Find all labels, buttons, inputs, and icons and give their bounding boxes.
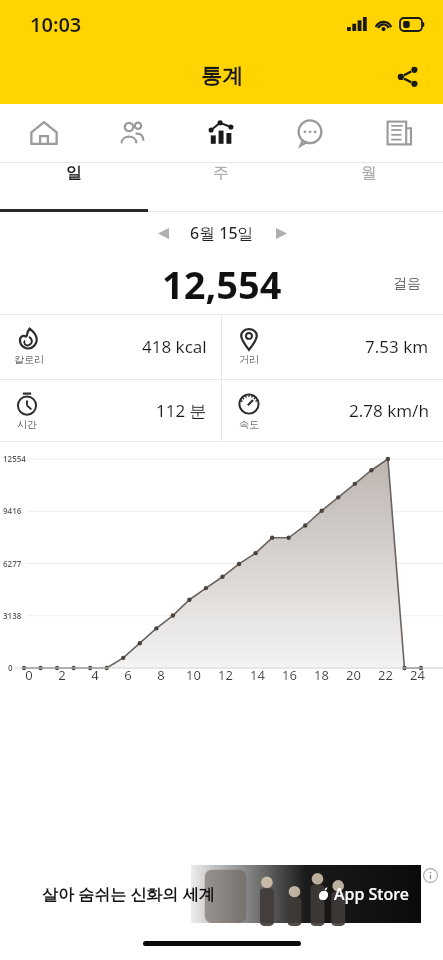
staticText: 6277: [3, 558, 22, 569]
staticText: 12: [218, 666, 233, 684]
staticText: 시간: [17, 418, 37, 431]
staticText: 칼로리: [14, 353, 44, 366]
staticText: 10: [186, 666, 201, 684]
staticText: 112 분: [156, 399, 207, 422]
staticText: 0: [8, 662, 13, 673]
staticText: 8: [157, 666, 165, 684]
button[interactable]: Next day: [264, 216, 298, 250]
staticText: App Store: [334, 883, 409, 905]
staticText: 10:03: [30, 11, 82, 38]
button[interactable]: Previous day: [146, 216, 180, 250]
staticText: 월: [361, 163, 377, 183]
staticText: 12,554: [162, 258, 282, 310]
button[interactable]: 월: [295, 163, 443, 183]
button[interactable]: App Store: [0, 862, 443, 926]
button[interactable]: 속도: [222, 380, 443, 441]
staticText: 6월 15일: [190, 222, 254, 244]
staticText: 24: [410, 666, 425, 684]
button[interactable]: 거리: [222, 315, 443, 377]
button[interactable]: Home: [0, 104, 88, 162]
button[interactable]: 일: [0, 163, 147, 183]
staticText: 12554: [3, 453, 26, 464]
button[interactable]: Ad info: [421, 866, 439, 884]
button[interactable]: 시간: [0, 380, 221, 441]
staticText: 418 kcal: [142, 335, 207, 358]
staticText: 2: [58, 666, 66, 684]
staticText: 0: [25, 666, 33, 684]
staticText: 3138: [3, 610, 22, 621]
staticText: 2.78 km/h: [349, 399, 429, 422]
staticText: 일: [66, 163, 82, 183]
button[interactable]: Friends: [88, 104, 176, 162]
staticText: 4: [91, 666, 99, 684]
staticText: 걸음: [393, 275, 421, 293]
staticText: 18: [314, 666, 329, 684]
staticText: 22: [378, 666, 393, 684]
button[interactable]: News: [354, 104, 443, 162]
button[interactable]: Share: [385, 54, 429, 98]
button[interactable]: Statistics: [176, 104, 265, 162]
staticText: 7.53 km: [365, 335, 429, 358]
staticText: 16: [282, 666, 297, 684]
button[interactable]: 칼로리: [0, 315, 221, 377]
staticText: 속도: [239, 418, 259, 431]
staticText: 14: [250, 666, 265, 684]
staticText: 살아 숨쉬는 신화의 세계: [42, 883, 215, 905]
button[interactable]: 주: [147, 163, 295, 183]
staticText: 20: [346, 666, 361, 684]
staticText: 통계: [201, 63, 243, 89]
staticText: 주: [213, 163, 229, 183]
button[interactable]: Chat: [265, 104, 354, 162]
staticText: 거리: [239, 353, 259, 366]
staticText: 9416: [3, 505, 22, 516]
staticText: 6: [124, 666, 132, 684]
